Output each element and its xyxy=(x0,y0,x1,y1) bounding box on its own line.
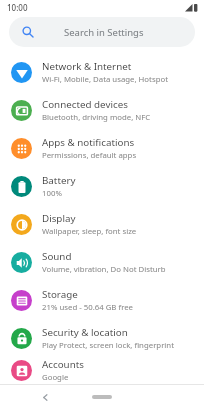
button[interactable]: Sound xyxy=(0,243,204,281)
staticText: Storage xyxy=(42,288,78,301)
staticText: 100% xyxy=(42,188,62,199)
staticText: Wallpaper, sleep, font size xyxy=(42,226,137,237)
staticText: Sound xyxy=(42,250,72,263)
staticText: Search in Settings xyxy=(64,26,144,39)
staticText: Bluetooth, driving mode, NFC xyxy=(42,112,151,123)
staticText: Google xyxy=(42,372,69,383)
staticText: Security & location xyxy=(42,326,128,339)
button[interactable]: Search in Settings xyxy=(9,17,195,47)
button[interactable]: Home xyxy=(87,389,117,405)
staticText: Wi-Fi, Mobile, Data usage, Hotspot xyxy=(42,74,168,85)
staticText: Battery xyxy=(42,174,76,187)
button[interactable]: Battery xyxy=(0,167,204,205)
staticText: Accounts xyxy=(42,358,84,371)
staticText: Permissions, default apps xyxy=(42,150,137,161)
button[interactable]: Accounts xyxy=(0,357,204,384)
button[interactable]: Apps & notifications xyxy=(0,129,204,167)
staticText: Play Protect, screen lock, fingerprint xyxy=(42,340,175,351)
staticText: Network & Internet xyxy=(42,60,132,73)
staticText: Display xyxy=(42,212,76,225)
button[interactable]: Network & Internet xyxy=(0,53,204,91)
button[interactable]: Security & location xyxy=(0,319,204,357)
button[interactable]: Connected devices xyxy=(0,91,204,129)
button[interactable]: Back xyxy=(36,388,54,406)
button[interactable]: Display xyxy=(0,205,204,243)
staticText: Apps & notifications xyxy=(42,136,135,149)
staticText: 21% used - 50.64 GB free xyxy=(42,302,134,313)
button[interactable]: Storage xyxy=(0,281,204,319)
staticText: Volume, vibration, Do Not Disturb xyxy=(42,264,166,275)
staticText: 10:00 xyxy=(7,2,28,13)
staticText: Connected devices xyxy=(42,98,128,111)
